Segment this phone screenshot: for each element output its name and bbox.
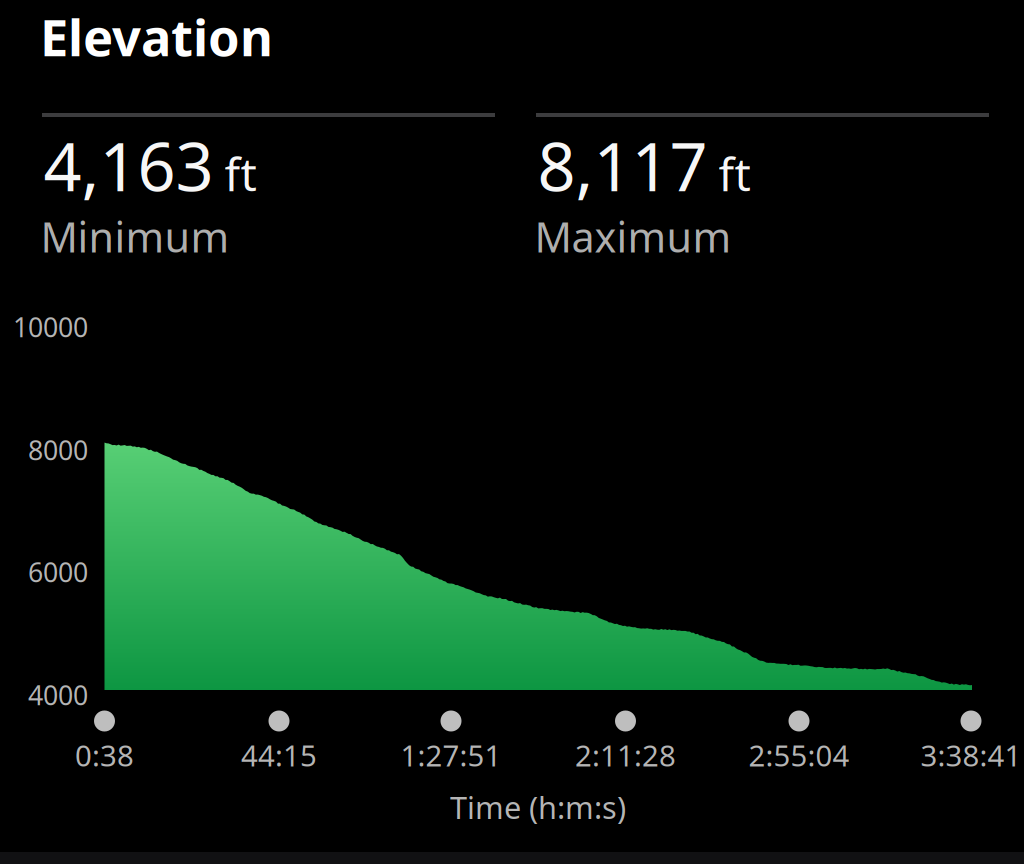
staticText: 10000 — [13, 309, 88, 345]
staticText: ft — [224, 143, 256, 204]
staticText: 2:11:28 — [575, 735, 676, 774]
staticText: 1:27:51 — [400, 735, 501, 774]
button[interactable]: 8,117 — [536, 113, 989, 263]
staticText: 44:15 — [241, 735, 317, 774]
staticText: Time (h:m:s) — [450, 787, 626, 827]
staticText: 8000 — [28, 432, 88, 468]
staticText: Minimum — [40, 209, 229, 264]
staticText: 8,117 — [537, 121, 707, 209]
staticText: Elevation — [40, 3, 273, 70]
staticText: 2:55:04 — [748, 735, 849, 774]
staticText: 0:38 — [75, 735, 134, 774]
staticText: ft — [718, 143, 750, 204]
staticText: Maximum — [534, 209, 731, 264]
staticText: 4,163 — [43, 121, 213, 209]
staticText: 6000 — [28, 554, 88, 590]
staticText: 4000 — [28, 677, 88, 713]
staticText: 3:38:41 — [920, 735, 1021, 774]
button[interactable]: 4,163 — [42, 113, 495, 263]
